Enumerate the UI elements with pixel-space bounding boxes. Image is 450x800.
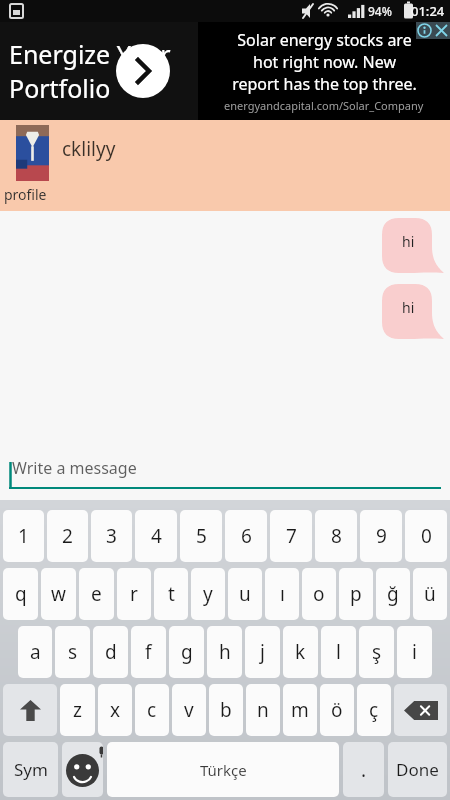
button[interactable]: ş (359, 626, 394, 678)
button[interactable]: 2 (47, 510, 88, 562)
staticText: ü (424, 581, 436, 607)
button[interactable]: c (135, 684, 169, 736)
button[interactable]: Türkçe (107, 742, 339, 797)
button[interactable]: 3 (91, 510, 132, 562)
staticText: ğ (387, 581, 399, 607)
button[interactable]: hi (382, 284, 444, 339)
staticText: hi (402, 298, 415, 317)
staticText: j (260, 639, 265, 665)
button[interactable]: y (191, 568, 225, 620)
button[interactable]: d (93, 626, 128, 678)
staticText: s (68, 639, 78, 665)
button[interactable]: profile (0, 120, 450, 211)
staticText: t (168, 581, 175, 607)
button[interactable]: h (207, 626, 242, 678)
staticText: 2 (62, 523, 73, 549)
button[interactable]: b (209, 684, 243, 736)
staticText: Write a message (12, 457, 137, 479)
button[interactable]: s (55, 626, 90, 678)
staticText: e (91, 581, 102, 607)
button[interactable]: j (245, 626, 280, 678)
button[interactable]: z (60, 684, 95, 736)
staticText: h (219, 639, 231, 665)
staticText: ö (331, 697, 343, 723)
button[interactable]: Write a message (0, 438, 450, 500)
staticText: cklilyy (62, 136, 116, 162)
staticText: r (130, 581, 138, 607)
staticText: n (257, 697, 269, 723)
button[interactable]: ü (413, 568, 447, 620)
staticText: Energize Your (9, 37, 171, 71)
staticText: 9 (376, 523, 387, 549)
staticText: Portfolio (9, 71, 111, 105)
staticText: hot right now. New (253, 51, 396, 73)
button[interactable]: ç (357, 684, 391, 736)
staticText: p (350, 581, 362, 607)
staticText: z (73, 697, 82, 723)
staticText: 3 (106, 523, 117, 549)
button[interactable]: Done (388, 742, 447, 797)
staticText: hi (402, 232, 415, 251)
button[interactable]: Backspace (394, 684, 447, 736)
button[interactable]: Shift (3, 684, 57, 736)
button[interactable]: 6 (225, 510, 267, 562)
button[interactable]: a (18, 626, 52, 678)
button[interactable]: g (169, 626, 204, 678)
staticText: Sym (14, 758, 48, 781)
button[interactable]: 1 (3, 510, 44, 562)
button[interactable]: 4 (135, 510, 177, 562)
button[interactable]: w (41, 568, 76, 620)
staticText: l (336, 639, 341, 665)
staticText: f (145, 639, 152, 665)
staticText: a (30, 639, 41, 665)
button[interactable]: 7 (270, 510, 312, 562)
staticText: 1 (18, 523, 29, 549)
button[interactable]: Sym (3, 742, 58, 797)
staticText: c (147, 697, 157, 723)
button[interactable]: Close ad (433, 22, 450, 39)
staticText: k (295, 639, 306, 665)
staticText: i (412, 639, 417, 665)
button[interactable]: m (283, 684, 317, 736)
button[interactable]: x (98, 684, 132, 736)
staticText: g (181, 639, 193, 665)
button[interactable]: Ad info (416, 22, 433, 39)
staticText: w (51, 581, 66, 607)
button[interactable]: n (246, 684, 280, 736)
button[interactable]: 5 (180, 510, 222, 562)
button[interactable]: o (302, 568, 336, 620)
staticText: 7 (286, 523, 297, 549)
button[interactable]: 9 (360, 510, 402, 562)
button[interactable]: l (321, 626, 356, 678)
staticText: q (15, 581, 27, 607)
staticText: m (291, 697, 309, 723)
button[interactable]: p (339, 568, 373, 620)
button[interactable]: k (283, 626, 318, 678)
button[interactable]: q (3, 568, 38, 620)
button[interactable]: 0 (405, 510, 447, 562)
staticText: energyandcapital.com/Solar_Company (224, 98, 424, 113)
button[interactable]: ö (320, 684, 354, 736)
button[interactable]: e (79, 568, 114, 620)
button[interactable]: hi (382, 218, 444, 273)
button[interactable]: ı (265, 568, 299, 620)
staticText: report has the top three. (232, 73, 417, 95)
staticText: 01:24 (411, 2, 445, 20)
staticText: o (313, 581, 325, 607)
button[interactable]: i (397, 626, 432, 678)
button[interactable]: . (343, 742, 384, 797)
staticText: Done (396, 758, 439, 781)
button[interactable]: ğ (376, 568, 410, 620)
button[interactable]: f (131, 626, 166, 678)
staticText: 8 (331, 523, 342, 549)
staticText: 6 (241, 523, 252, 549)
button[interactable]: 8 (315, 510, 357, 562)
staticText: 0 (421, 523, 432, 549)
button[interactable]: r (117, 568, 151, 620)
button[interactable]: Emoji (62, 742, 103, 797)
button[interactable]: v (172, 684, 206, 736)
button[interactable]: Advertisement (0, 22, 450, 120)
staticText: x (110, 697, 121, 723)
button[interactable]: u (228, 568, 262, 620)
button[interactable]: t (154, 568, 188, 620)
